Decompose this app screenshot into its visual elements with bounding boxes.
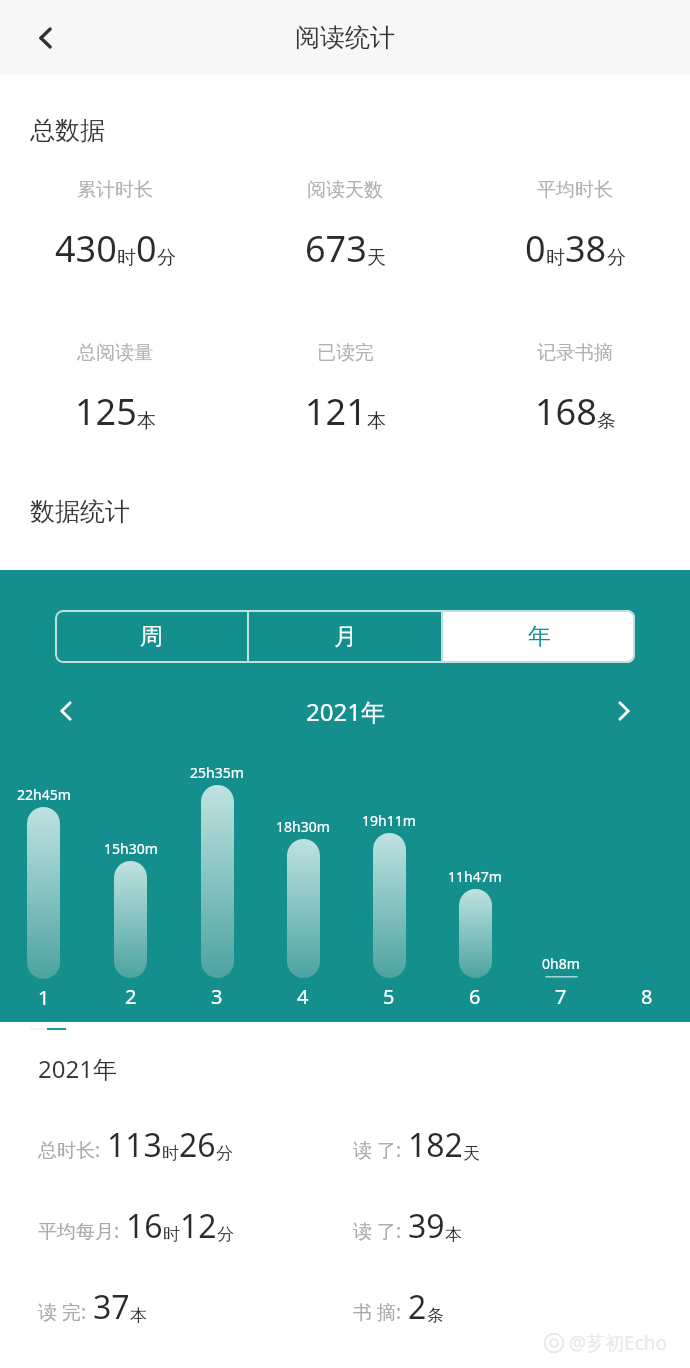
staticText: 年 bbox=[528, 622, 551, 651]
staticText: 673 bbox=[305, 224, 367, 273]
button[interactable]: 月 bbox=[249, 610, 441, 663]
staticText: 8 bbox=[641, 983, 653, 1010]
staticText: 2021年 bbox=[38, 1052, 117, 1085]
staticText: 条 bbox=[597, 409, 616, 433]
staticText: 7 bbox=[555, 983, 567, 1010]
staticText: 16 bbox=[126, 1204, 163, 1248]
staticText: 累计时长 bbox=[77, 178, 153, 202]
staticText: 19h11m bbox=[362, 811, 416, 830]
button[interactable]: Previous year bbox=[44, 689, 88, 733]
staticText: 读 了: bbox=[353, 1218, 402, 1244]
staticText: 时 bbox=[163, 1224, 180, 1245]
staticText: 25h35m bbox=[190, 763, 244, 782]
staticText: 11h47m bbox=[448, 867, 502, 886]
staticText: 121 bbox=[305, 387, 367, 436]
staticText: 读 完: bbox=[38, 1299, 87, 1325]
staticText: 15h30m bbox=[104, 839, 158, 858]
staticText: 113 bbox=[107, 1123, 162, 1167]
staticText: 37 bbox=[93, 1285, 130, 1329]
staticText: 39 bbox=[408, 1204, 445, 1248]
staticText: 分 bbox=[217, 1224, 234, 1245]
staticText: 条 bbox=[427, 1305, 444, 1326]
button[interactable]: Next year bbox=[602, 689, 646, 733]
staticText: 分 bbox=[607, 246, 626, 270]
staticText: 0 bbox=[136, 224, 157, 273]
staticText: 38 bbox=[565, 224, 607, 273]
button[interactable]: Back bbox=[18, 10, 74, 66]
staticText: 数据统计 bbox=[30, 496, 130, 527]
staticText: 分 bbox=[157, 246, 176, 270]
staticText: 182 bbox=[408, 1123, 463, 1167]
staticText: 平均每月: bbox=[38, 1218, 120, 1244]
staticText: 0h8m bbox=[542, 954, 580, 973]
staticText: 168 bbox=[535, 387, 597, 436]
staticText: 430 bbox=[55, 224, 117, 273]
staticText: 0 bbox=[525, 224, 546, 273]
staticText: 读 了: bbox=[353, 1137, 402, 1163]
staticText: 时 bbox=[162, 1143, 179, 1164]
staticText: 时 bbox=[117, 246, 136, 270]
staticText: 总阅读量 bbox=[77, 341, 153, 365]
staticText: 月 bbox=[334, 622, 357, 651]
staticText: 5 bbox=[383, 983, 395, 1010]
staticText: 4 bbox=[297, 983, 309, 1010]
staticText: 总时长: bbox=[38, 1137, 101, 1163]
staticText: 天 bbox=[463, 1143, 480, 1164]
staticText: 本 bbox=[130, 1305, 147, 1326]
staticText: 阅读天数 bbox=[307, 178, 383, 202]
staticText: 本 bbox=[367, 409, 386, 433]
button[interactable]: 年 bbox=[443, 610, 635, 663]
staticText: @芗初Echo bbox=[569, 1330, 668, 1356]
staticText: 6 bbox=[469, 983, 481, 1010]
staticText: 天 bbox=[367, 246, 386, 270]
staticText: 22h45m bbox=[17, 785, 71, 804]
button[interactable]: 周 bbox=[55, 610, 247, 663]
staticText: 记录书摘 bbox=[537, 341, 613, 365]
staticText: 书 摘: bbox=[353, 1299, 402, 1325]
staticText: 阅读统计 bbox=[295, 22, 395, 53]
staticText: 时 bbox=[546, 246, 565, 270]
staticText: 已读完 bbox=[317, 341, 374, 365]
staticText: 本 bbox=[445, 1224, 462, 1245]
staticText: 125 bbox=[75, 387, 137, 436]
staticText: 平均时长 bbox=[537, 178, 613, 202]
staticText: 2021年 bbox=[306, 695, 385, 728]
staticText: 本 bbox=[137, 409, 156, 433]
staticText: 18h30m bbox=[276, 817, 330, 836]
staticText: 3 bbox=[211, 983, 223, 1010]
staticText: 2 bbox=[125, 983, 137, 1010]
staticText: 分 bbox=[216, 1143, 233, 1164]
staticText: 1 bbox=[38, 984, 50, 1011]
staticText: 12 bbox=[180, 1204, 217, 1248]
staticText: 26 bbox=[179, 1123, 216, 1167]
staticText: 周 bbox=[140, 622, 163, 651]
staticText: 总数据 bbox=[30, 115, 105, 146]
staticText: 2 bbox=[408, 1285, 427, 1329]
